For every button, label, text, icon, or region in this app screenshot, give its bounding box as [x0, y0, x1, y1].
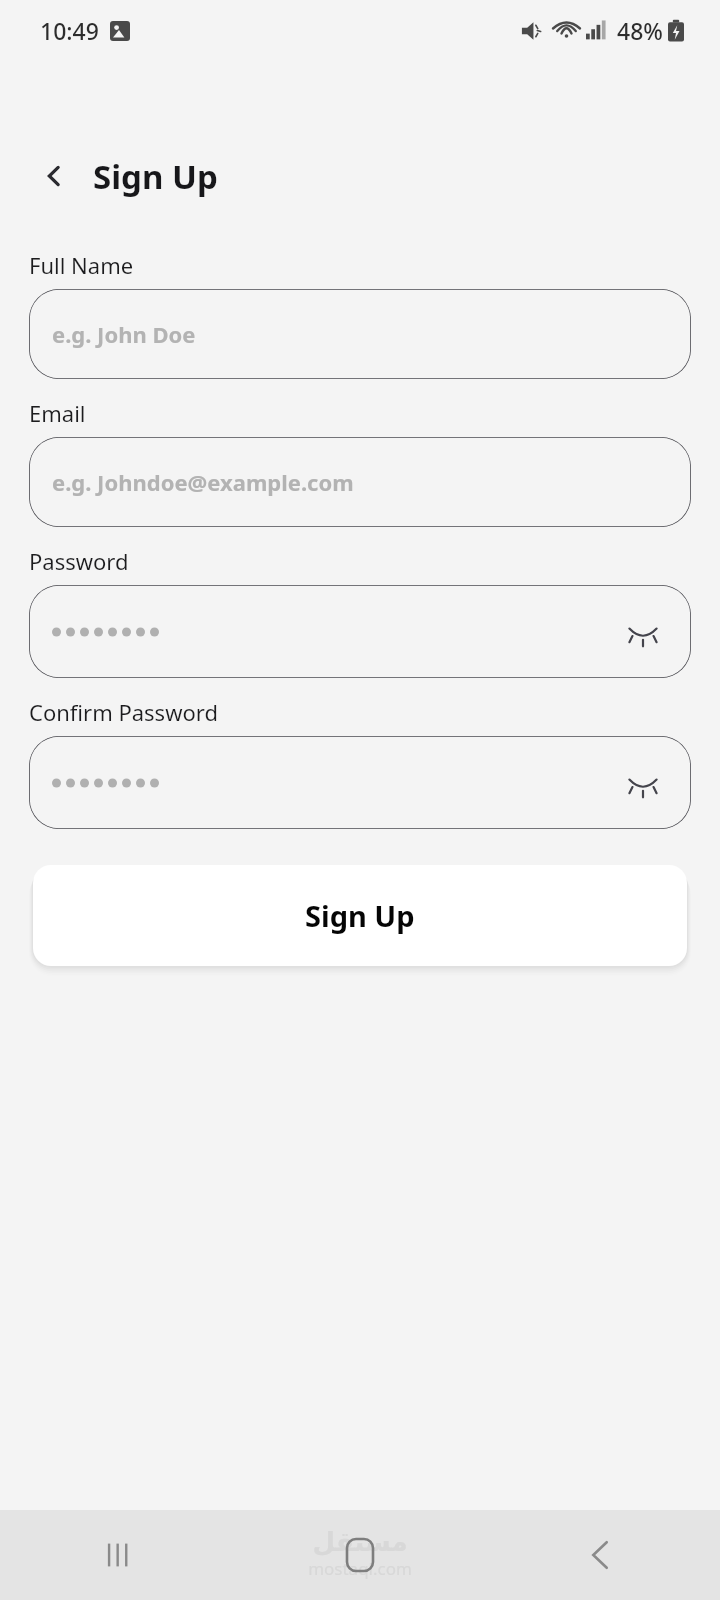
staticText: e.g. Johndoe@example.com [52, 467, 354, 497]
staticText: Sign Up [305, 896, 415, 935]
staticText: Email [29, 398, 86, 428]
staticText: 10:49 [40, 15, 99, 46]
staticText: Confirm Password [29, 697, 218, 727]
button[interactable]: Show password [619, 759, 667, 807]
button[interactable]: Show password [29, 736, 691, 829]
staticText: Password [29, 546, 129, 576]
staticText: مستقل [312, 1527, 408, 1557]
button[interactable]: Show password [29, 585, 691, 678]
button[interactable]: Show password [619, 608, 667, 656]
button[interactable]: Back [480, 1510, 720, 1600]
staticText: mostaql.com [308, 1557, 412, 1580]
staticText: 48% [617, 15, 663, 46]
staticText: Full Name [29, 250, 134, 280]
staticText: e.g. John Doe [52, 319, 196, 349]
button[interactable]: Home [240, 1510, 480, 1600]
button[interactable]: Back [29, 151, 79, 201]
button[interactable]: e.g. John Doe [29, 289, 691, 379]
button[interactable]: Sign Up [33, 865, 687, 966]
button[interactable]: e.g. Johndoe@example.com [29, 437, 691, 527]
button[interactable]: Recent apps [0, 1510, 240, 1600]
staticText: Sign Up [93, 154, 218, 199]
